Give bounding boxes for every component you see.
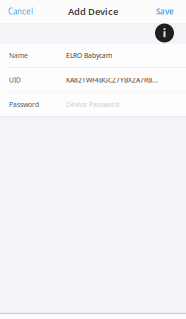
button[interactable]: Name — [0, 43, 186, 67]
staticText: KA82TWF4BGCZ7YBXZA7RB... — [66, 76, 158, 84]
staticText: Save — [156, 6, 174, 17]
staticText: Device Password — [66, 100, 119, 109]
button[interactable]: Password — [0, 92, 186, 116]
button[interactable]: Save — [150, 0, 186, 23]
staticText: Password — [9, 100, 39, 109]
staticText: UID — [9, 76, 21, 84]
staticText: Cancel — [8, 6, 33, 17]
staticText: Add Device — [68, 5, 118, 18]
button[interactable]: Info — [155, 23, 174, 42]
button[interactable]: UID — [0, 68, 186, 92]
staticText: ELRO Babycam — [66, 51, 112, 60]
staticText: Name — [9, 51, 28, 60]
button[interactable]: Cancel — [0, 0, 39, 23]
